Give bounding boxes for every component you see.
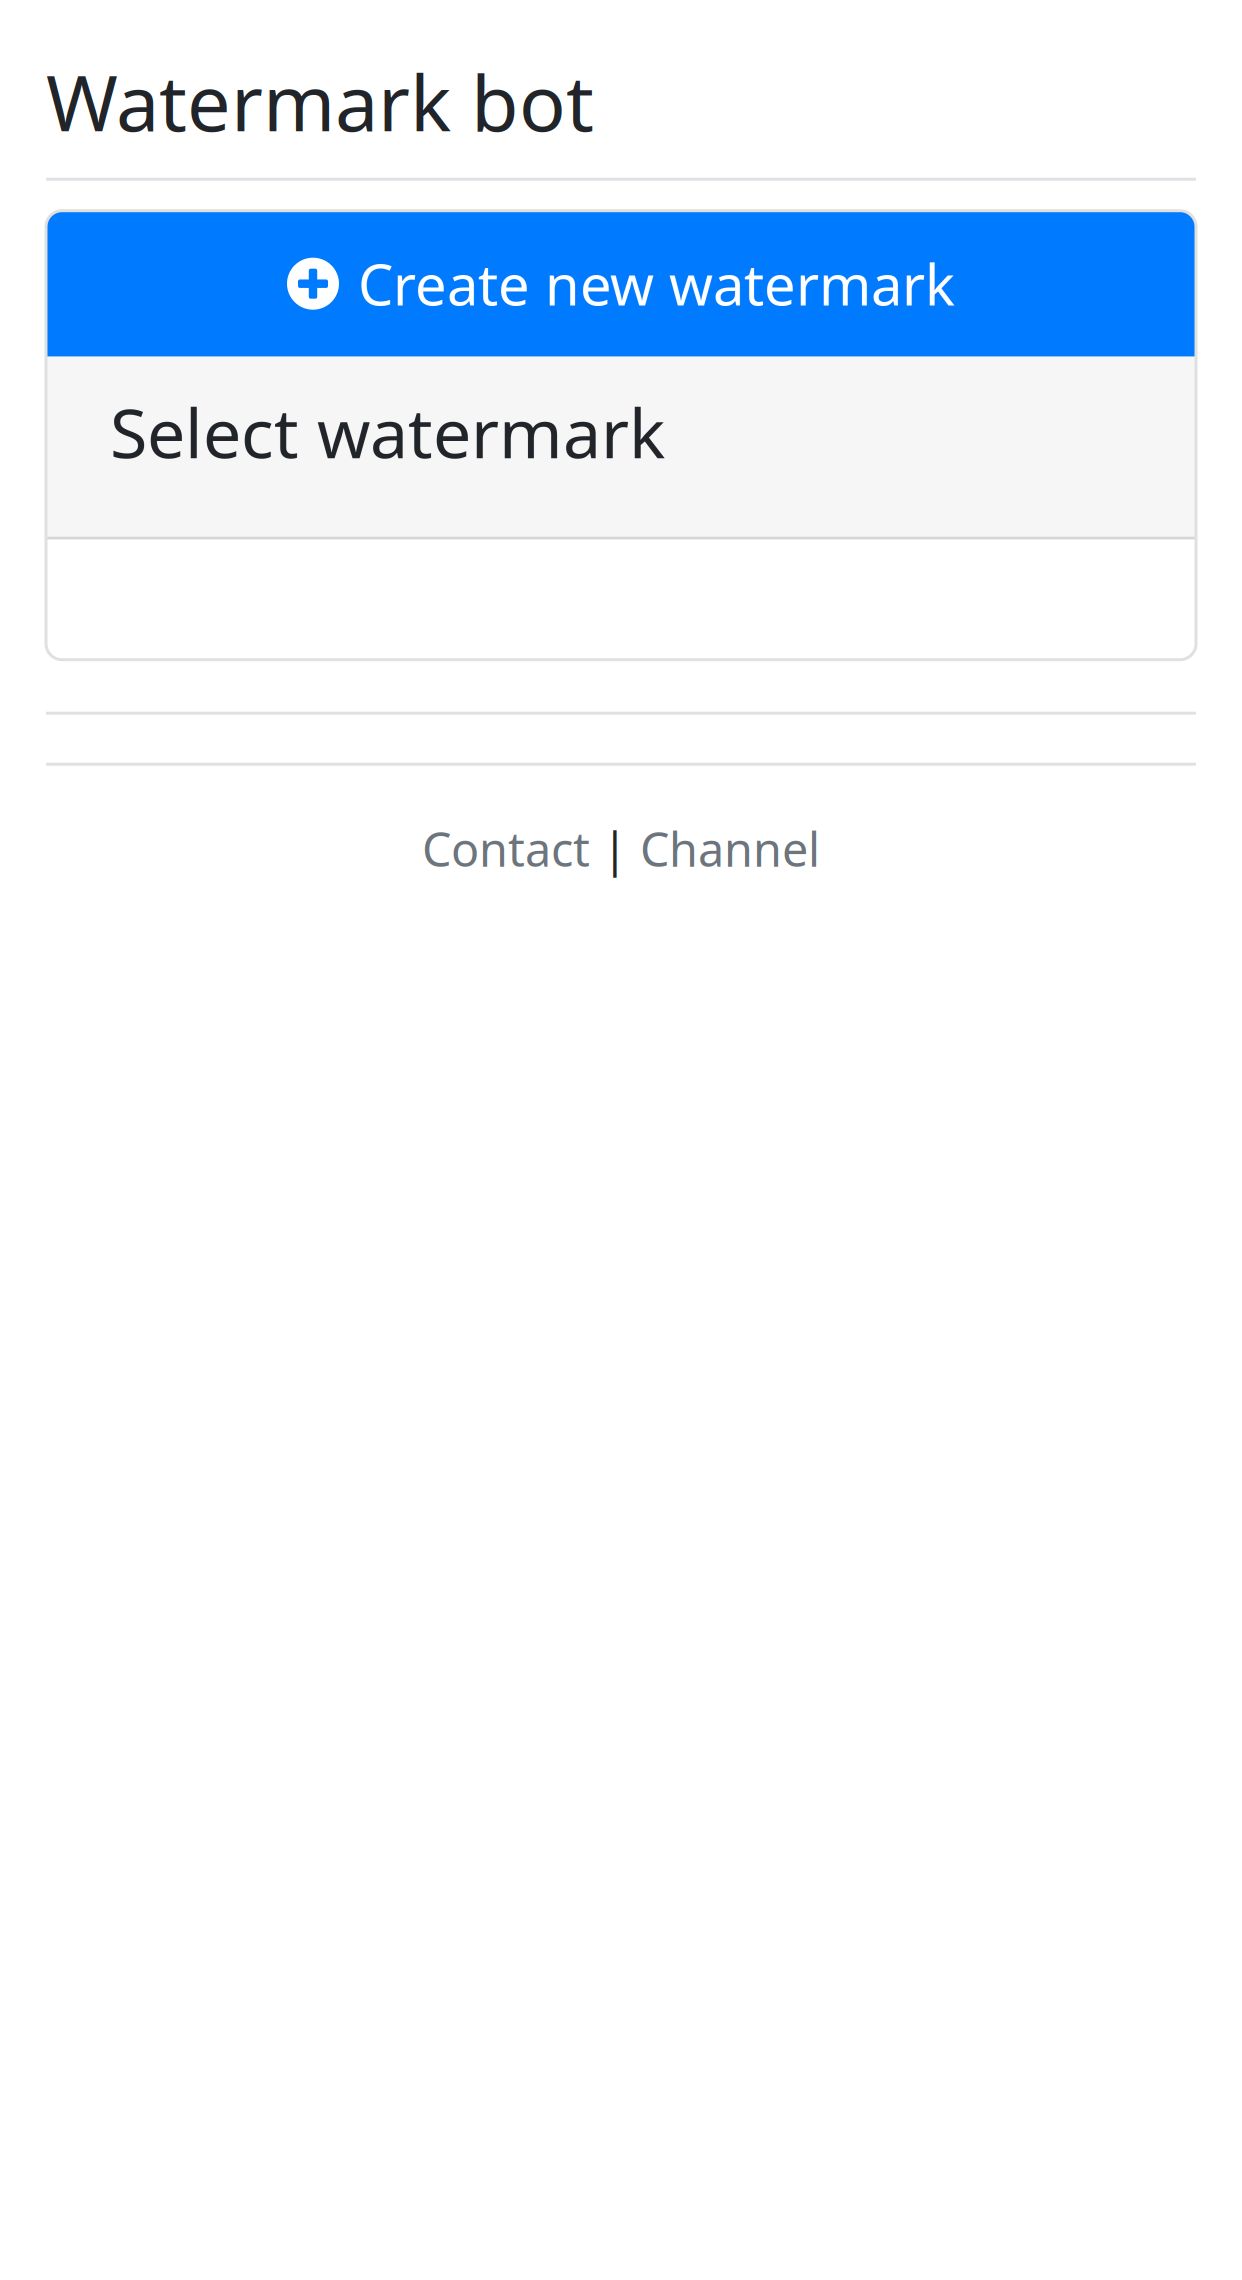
staticText: Create new watermark bbox=[358, 246, 955, 321]
staticText: | bbox=[590, 818, 640, 880]
button[interactable]: Create new watermark bbox=[46, 211, 1196, 357]
button[interactable]: Contact bbox=[422, 818, 590, 880]
staticText: Select watermark bbox=[110, 387, 665, 477]
staticText: Channel bbox=[640, 818, 820, 880]
staticText: Watermark bot bbox=[46, 50, 594, 153]
staticText: Contact bbox=[422, 818, 590, 880]
button[interactable]: Channel bbox=[640, 818, 820, 880]
button[interactable]: Select watermark bbox=[46, 357, 1196, 537]
